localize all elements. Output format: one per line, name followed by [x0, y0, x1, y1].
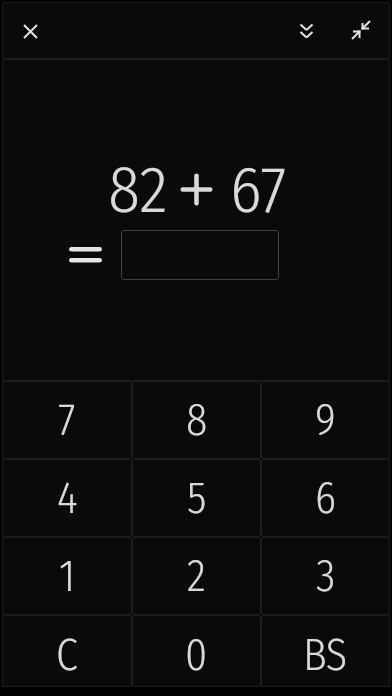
staticText: 6: [315, 472, 337, 525]
button[interactable]: 2: [132, 537, 261, 615]
staticText: 3: [316, 550, 336, 603]
button[interactable]: 6: [261, 459, 390, 537]
button[interactable]: C: [2, 615, 132, 687]
button[interactable]: 5: [132, 459, 261, 537]
staticText: 0: [185, 629, 208, 682]
staticText: 1: [59, 550, 76, 603]
button[interactable]: BS: [261, 615, 390, 687]
button[interactable]: 9: [261, 381, 390, 459]
staticText: C: [56, 629, 78, 682]
staticText: 8: [186, 394, 208, 447]
staticText: BS: [303, 629, 348, 682]
staticText: 9: [315, 394, 336, 447]
button[interactable]: [121, 230, 279, 280]
button[interactable]: 7: [2, 381, 132, 459]
staticText: 5: [187, 472, 207, 525]
button[interactable]: [6, 7, 54, 55]
button[interactable]: 0: [132, 615, 261, 687]
staticText: 7: [58, 394, 76, 447]
button[interactable]: 1: [2, 537, 132, 615]
staticText: 82: [108, 150, 168, 229]
button[interactable]: [337, 7, 385, 55]
staticText: 2: [187, 550, 206, 603]
staticText: 67: [230, 150, 287, 229]
button[interactable]: 3: [261, 537, 390, 615]
button[interactable]: 8: [132, 381, 261, 459]
button[interactable]: 4: [2, 459, 132, 537]
button[interactable]: [282, 7, 330, 55]
staticText: 4: [57, 472, 78, 525]
